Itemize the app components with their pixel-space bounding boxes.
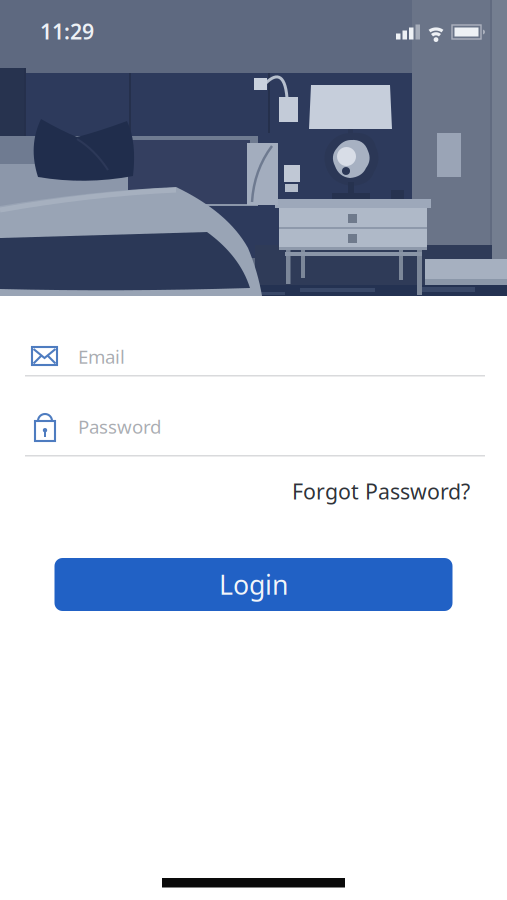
staticText: Login [219,567,288,602]
button[interactable]: Password [25,410,485,457]
button[interactable]: Forgot Password? [292,477,470,505]
button[interactable]: Email [25,338,485,377]
button[interactable]: Login [54,558,452,611]
staticText: 11:29 [40,17,94,45]
staticText: Email [78,344,125,369]
staticText: Forgot Password? [292,477,470,505]
staticText: Password [78,414,161,439]
